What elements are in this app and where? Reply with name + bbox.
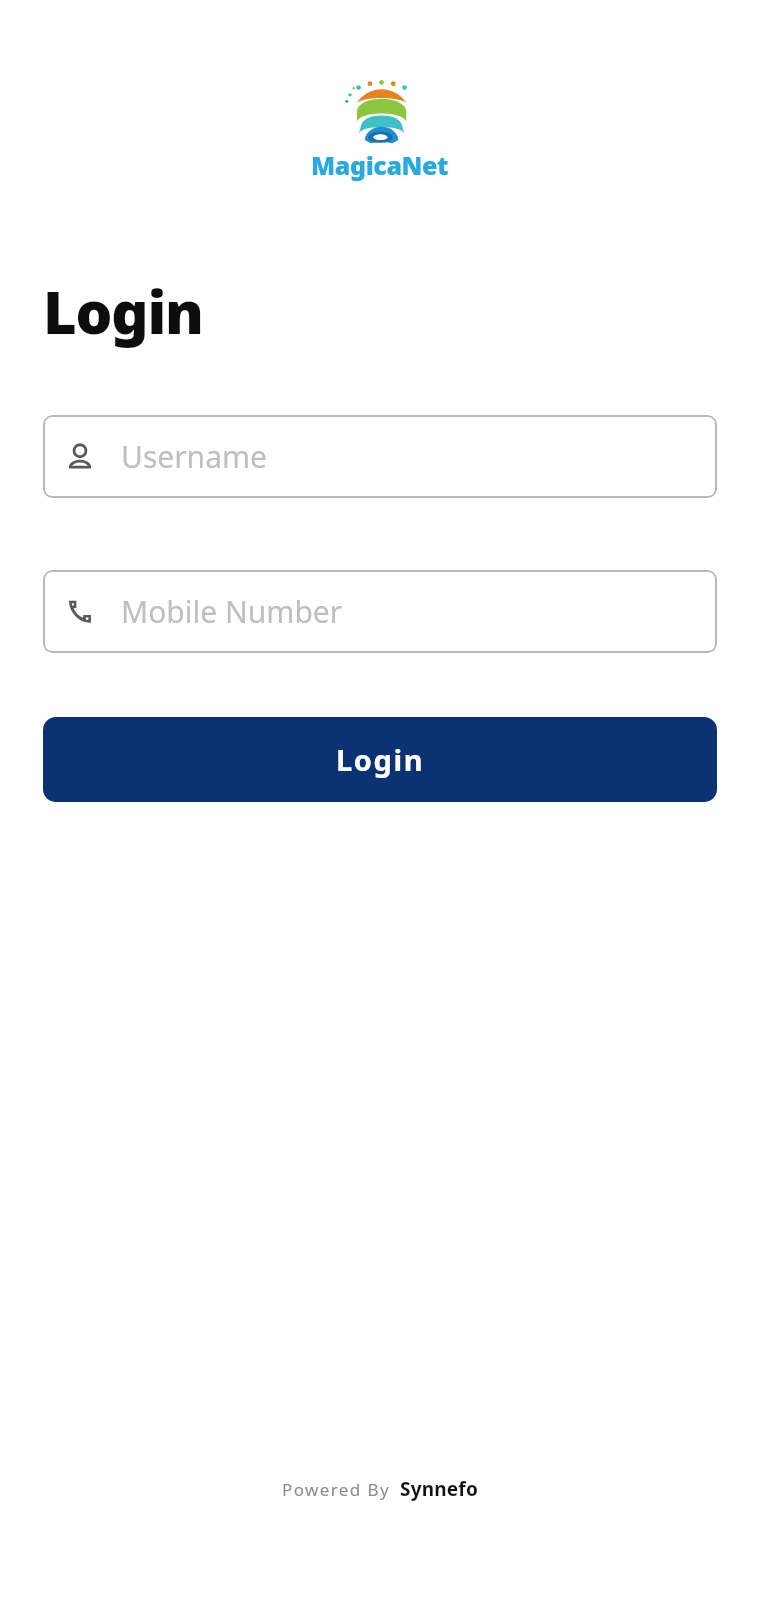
staticText: Powered By — [282, 1478, 391, 1501]
staticText: MagicaNet — [311, 148, 449, 182]
staticText: Username — [121, 436, 267, 477]
button[interactable]: Username — [43, 415, 717, 498]
staticText: Mobile Number — [121, 591, 343, 632]
staticText: Login — [43, 272, 203, 351]
button[interactable]: Login — [43, 717, 717, 802]
staticText: Login — [336, 740, 425, 779]
staticText: Synnefo — [400, 1476, 478, 1502]
button[interactable]: Mobile Number — [43, 570, 717, 653]
